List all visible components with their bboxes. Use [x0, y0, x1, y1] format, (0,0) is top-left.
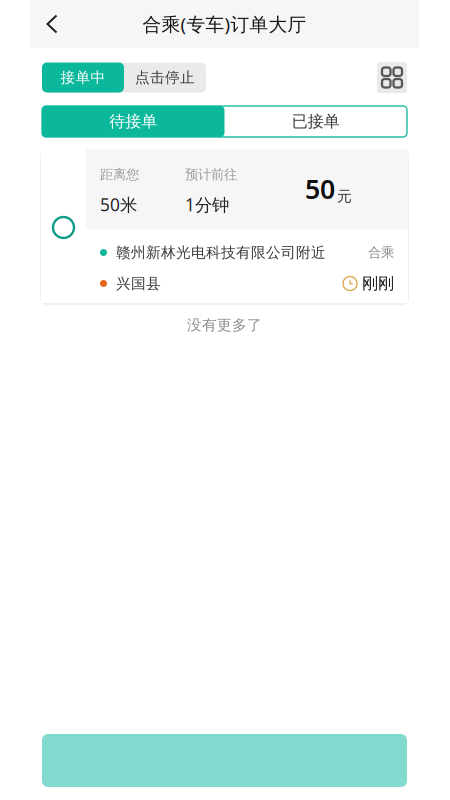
button[interactable]: 距离您: [41, 149, 408, 303]
staticText: 50米: [100, 193, 137, 216]
staticText: 接单中: [60, 68, 105, 86]
staticText: 1分钟: [185, 193, 229, 216]
staticText: 50: [305, 171, 335, 206]
button[interactable]: Confirm: [42, 734, 407, 787]
button[interactable]: 接单中: [42, 62, 124, 92]
staticText: 合乘(专车)订单大厅: [142, 12, 306, 36]
button[interactable]: Switch layout: [377, 62, 407, 93]
staticText: 已接单: [292, 112, 340, 131]
staticText: 点击停止: [135, 68, 195, 86]
staticText: 待接单: [109, 112, 157, 131]
staticText: 没有更多了: [187, 316, 262, 334]
staticText: 距离您: [100, 166, 139, 183]
staticText: 元: [337, 187, 352, 205]
staticText: 兴国县: [116, 274, 161, 292]
button[interactable]: 已接单: [224, 106, 407, 137]
staticText: 合乘: [368, 244, 394, 261]
staticText: 预计前往: [185, 166, 237, 183]
staticText: 赣州新林光电科技有限公司附近: [116, 243, 326, 261]
button[interactable]: Back: [30, 0, 74, 48]
staticText: 刚刚: [362, 274, 394, 293]
button[interactable]: 待接单: [42, 106, 224, 137]
button[interactable]: 点击停止: [124, 62, 206, 92]
